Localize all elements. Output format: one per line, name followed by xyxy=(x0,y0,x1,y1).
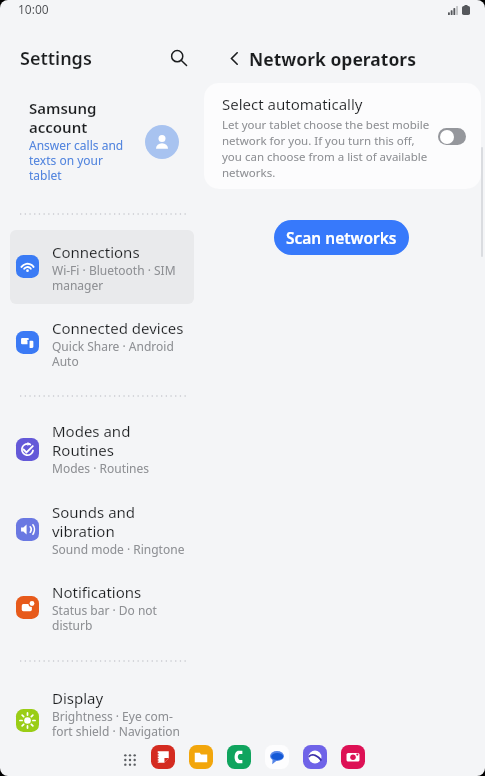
staticText: Sound mode · Ringtone xyxy=(52,541,185,557)
button[interactable]: Connected devices xyxy=(10,306,194,380)
staticText: Scan networks xyxy=(286,227,397,248)
staticText: Sounds and vibration xyxy=(52,502,136,541)
staticText: Brightness · Eye com- fort shield · Navi… xyxy=(52,708,181,740)
staticText: Wi-Fi · Bluetooth · SIM manager xyxy=(52,262,176,294)
button[interactable]: Samsung Notes xyxy=(149,743,177,771)
button[interactable]: Select automatically xyxy=(438,128,466,145)
button[interactable]: Select automatically xyxy=(204,83,481,189)
button[interactable]: Apps xyxy=(116,746,143,773)
button[interactable]: Search xyxy=(163,42,195,74)
staticText: Samsung account xyxy=(29,98,97,137)
staticText: Let your tablet choose the best mobile n… xyxy=(222,117,430,181)
button[interactable]: Samsung Internet xyxy=(301,743,329,771)
button[interactable]: Sounds and vibration xyxy=(10,489,194,567)
button[interactable]: My Files xyxy=(187,743,215,771)
staticText: Quick Share · Android Auto xyxy=(52,338,174,370)
staticText: Connections xyxy=(52,242,140,262)
button[interactable]: Connections xyxy=(10,230,194,304)
button[interactable]: Phone xyxy=(225,743,253,771)
staticText: Connected devices xyxy=(52,318,184,338)
staticText: Display xyxy=(52,688,104,708)
staticText: Network operators xyxy=(249,47,416,71)
staticText: Modes · Routines xyxy=(52,460,149,476)
button[interactable]: Samsung account xyxy=(0,92,200,192)
button[interactable]: Modes and Routines xyxy=(10,408,194,486)
staticText: Status bar · Do not disturb xyxy=(52,602,157,634)
staticText: 10:00 xyxy=(18,1,49,17)
staticText: Settings xyxy=(20,46,92,71)
button[interactable]: Scan networks xyxy=(274,220,409,255)
staticText: Answer calls and texts on your tablet xyxy=(29,137,124,183)
button[interactable]: Display xyxy=(10,676,194,750)
staticText: Notifications xyxy=(52,582,142,602)
button[interactable]: Notifications xyxy=(10,570,194,644)
staticText: Select automatically xyxy=(222,94,363,114)
button[interactable]: Camera xyxy=(339,743,367,771)
button[interactable]: Back xyxy=(218,42,250,74)
button[interactable]: Messages xyxy=(263,743,291,771)
staticText: Modes and Routines xyxy=(52,421,131,460)
